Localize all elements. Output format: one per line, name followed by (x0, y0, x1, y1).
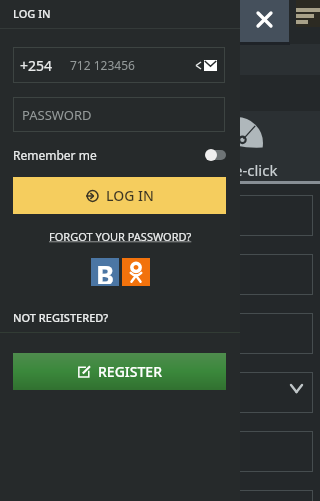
button[interactable]: PASSWORD (13, 97, 225, 132)
button[interactable]: Sign in with VKontakte (91, 258, 119, 286)
staticText: +254 (20, 56, 53, 75)
staticText: Remember me (13, 147, 97, 163)
staticText: NOT REGISTERED? (13, 310, 109, 325)
staticText: LOG IN (13, 6, 51, 21)
staticText: В (96, 256, 114, 284)
button[interactable]: LOG IN (13, 177, 226, 214)
button[interactable]: REGISTER (13, 353, 226, 390)
button[interactable]: Remember me (13, 144, 226, 165)
button[interactable]: FORGOT YOUR PASSWORD? (49, 229, 192, 244)
staticText: e-click (234, 160, 278, 180)
button[interactable]: +254 (13, 47, 225, 83)
button[interactable]: Close (240, 0, 289, 42)
staticText: LOG IN (106, 186, 154, 205)
button[interactable]: Sign in with Odnoklassniki (122, 258, 150, 286)
staticText: REGISTER (98, 362, 162, 381)
staticText: 712 123456 (70, 57, 135, 73)
staticText: PASSWORD (22, 106, 92, 124)
